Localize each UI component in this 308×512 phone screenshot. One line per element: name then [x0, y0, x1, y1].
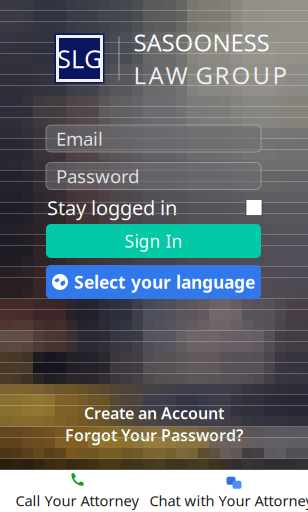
staticText: Password: [56, 164, 139, 188]
staticText: L A W G R O U P: [133, 59, 287, 91]
button[interactable]: Forgot Your Password?: [65, 426, 243, 444]
staticText: Forgot Your Password?: [65, 424, 243, 446]
staticText: Select your language: [74, 270, 255, 293]
staticText: Stay logged in: [47, 194, 177, 221]
staticText: Create an Account: [84, 402, 224, 424]
staticText: SASOONESS: [133, 26, 269, 58]
button[interactable]: Sign In: [46, 224, 261, 258]
button[interactable]: Email: [46, 125, 261, 152]
button[interactable]: Stay logged in: [47, 197, 262, 217]
button[interactable]: Create an Account: [84, 404, 224, 422]
button[interactable]: Chat with Your Attorney: [154, 470, 308, 512]
button[interactable]: Select your language: [46, 265, 261, 299]
staticText: Chat with Your Attorney: [149, 491, 308, 510]
staticText: Email: [56, 126, 103, 151]
staticText: Sign In: [124, 229, 182, 252]
staticText: SLG: [57, 42, 102, 75]
staticText: Call Your Attorney: [15, 491, 138, 510]
button[interactable]: Password: [46, 162, 261, 189]
button[interactable]: Call Your Attorney: [0, 470, 154, 512]
